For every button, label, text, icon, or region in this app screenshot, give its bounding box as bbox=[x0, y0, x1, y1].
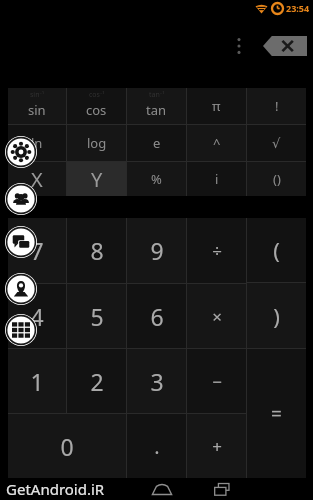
button[interactable]: ÷ bbox=[187, 218, 246, 283]
button[interactable]: 7 bbox=[8, 218, 66, 283]
staticText: 2 bbox=[90, 366, 104, 397]
button[interactable]: sin⁻¹ bbox=[8, 88, 66, 124]
button[interactable]: π bbox=[187, 88, 246, 124]
staticText: . bbox=[154, 433, 160, 460]
button[interactable]: Apps bbox=[5, 314, 37, 346]
staticText: tan bbox=[146, 101, 167, 119]
button[interactable]: = bbox=[247, 349, 306, 478]
button[interactable]: cos⁻¹ bbox=[67, 88, 126, 124]
button[interactable]: 4 bbox=[8, 284, 66, 348]
button[interactable]: 8 bbox=[67, 218, 126, 283]
staticText: 9 bbox=[150, 235, 164, 266]
button[interactable]: 1 bbox=[8, 349, 66, 413]
staticText: √ bbox=[272, 136, 281, 151]
staticText: ! bbox=[275, 97, 279, 115]
staticText: ÷ bbox=[212, 239, 222, 262]
button[interactable]: ( bbox=[247, 218, 306, 282]
button[interactable]: Recent apps bbox=[208, 479, 236, 499]
button[interactable]: More options bbox=[229, 33, 249, 59]
staticText: ^ bbox=[213, 134, 221, 152]
button[interactable]: e bbox=[127, 125, 186, 161]
button[interactable]: ! bbox=[247, 88, 306, 124]
staticText: i bbox=[215, 170, 219, 188]
staticText: 7 bbox=[30, 235, 44, 266]
button[interactable]: × bbox=[187, 284, 246, 348]
staticText: () bbox=[273, 170, 281, 188]
staticText: 3 bbox=[150, 366, 164, 397]
staticText: cos bbox=[86, 101, 107, 119]
staticText: 5 bbox=[90, 301, 104, 332]
button[interactable]: Clear bbox=[263, 36, 307, 56]
button[interactable]: log bbox=[67, 125, 126, 161]
button[interactable]: X bbox=[8, 162, 66, 196]
button[interactable]: () bbox=[247, 162, 306, 196]
staticText: log bbox=[87, 134, 107, 152]
staticText: = bbox=[271, 401, 282, 427]
staticText: 6 bbox=[150, 301, 164, 332]
button[interactable]: + bbox=[187, 414, 246, 478]
button[interactable]: Home bbox=[148, 479, 176, 499]
staticText: 0 bbox=[60, 431, 74, 462]
button[interactable]: − bbox=[187, 349, 246, 413]
staticText: + bbox=[212, 435, 222, 458]
button[interactable]: 9 bbox=[127, 218, 186, 283]
staticText: ) bbox=[273, 301, 280, 331]
staticText: 1 bbox=[30, 366, 44, 397]
staticText: ln bbox=[31, 134, 43, 152]
staticText: sin⁻¹ bbox=[30, 90, 45, 100]
staticText: 4 bbox=[30, 301, 44, 332]
button[interactable]: i bbox=[187, 162, 246, 196]
staticText: − bbox=[212, 370, 222, 393]
button[interactable]: tan⁻¹ bbox=[127, 88, 186, 124]
staticText: X bbox=[31, 166, 43, 193]
button[interactable]: 5 bbox=[67, 284, 126, 348]
button[interactable]: 6 bbox=[127, 284, 186, 348]
staticText: ( bbox=[273, 235, 280, 265]
staticText: e bbox=[153, 134, 161, 152]
button[interactable]: Settings bbox=[5, 136, 37, 168]
button[interactable]: ln bbox=[8, 125, 66, 161]
button[interactable]: Maps bbox=[5, 273, 37, 305]
button[interactable]: √ bbox=[247, 125, 306, 161]
staticText: Y bbox=[91, 166, 103, 193]
button[interactable]: Messages bbox=[5, 226, 37, 258]
button[interactable]: 3 bbox=[127, 349, 186, 413]
staticText: % bbox=[151, 170, 162, 188]
button[interactable]: Y bbox=[67, 162, 126, 196]
button[interactable]: Contacts bbox=[5, 183, 37, 215]
staticText: × bbox=[212, 305, 222, 328]
staticText: GetAndroid.iR bbox=[6, 479, 105, 499]
staticText: π bbox=[212, 97, 221, 115]
button[interactable]: ^ bbox=[187, 125, 246, 161]
button[interactable]: 0 bbox=[8, 414, 126, 478]
button[interactable]: . bbox=[127, 414, 186, 478]
staticText: cos⁻¹ bbox=[89, 90, 105, 100]
button[interactable]: ) bbox=[247, 283, 306, 348]
staticText: 8 bbox=[90, 235, 104, 266]
button[interactable]: % bbox=[127, 162, 186, 196]
button[interactable]: 2 bbox=[67, 349, 126, 413]
staticText: sin bbox=[28, 101, 46, 119]
staticText: 23:54 bbox=[286, 2, 310, 14]
staticText: tan⁻¹ bbox=[149, 90, 165, 100]
